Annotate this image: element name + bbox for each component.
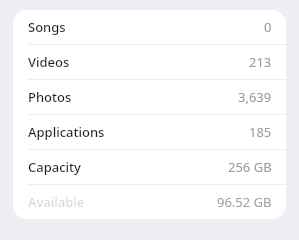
staticText: 96.52 GB xyxy=(217,193,272,211)
button[interactable]: Songs xyxy=(13,10,286,44)
button[interactable]: Videos xyxy=(13,45,286,79)
staticText: Available xyxy=(28,193,85,211)
staticText: Songs xyxy=(28,18,66,36)
staticText: 256 GB xyxy=(228,158,272,176)
button[interactable]: Capacity xyxy=(13,150,286,184)
staticText: Photos xyxy=(28,88,72,106)
staticText: 3,639 xyxy=(238,88,272,106)
staticText: Videos xyxy=(28,53,70,71)
staticText: 0 xyxy=(264,18,272,36)
button[interactable]: Available xyxy=(13,185,286,219)
staticText: 185 xyxy=(249,123,272,141)
staticText: Applications xyxy=(28,123,105,141)
button[interactable]: Photos xyxy=(13,80,286,114)
staticText: Capacity xyxy=(28,158,81,176)
staticText: 213 xyxy=(249,53,272,71)
button[interactable]: Applications xyxy=(13,115,286,149)
